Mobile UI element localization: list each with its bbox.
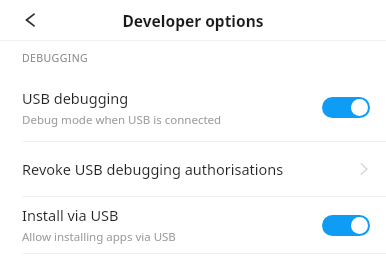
staticText: Revoke USB debugging authorisations	[22, 159, 360, 179]
staticText: Install via USB	[22, 205, 119, 225]
button[interactable]: USB debugging toggle, on	[322, 97, 370, 118]
staticText: Developer options	[0, 10, 386, 31]
staticText: DEBUGGING	[22, 51, 89, 65]
button[interactable]: Revoke USB debugging authorisations	[0, 142, 386, 196]
button[interactable]: Install via USB	[0, 197, 386, 253]
staticText: USB debugging	[22, 88, 129, 108]
button[interactable]: USB debugging	[0, 74, 386, 141]
staticText: Allow installing apps via USB	[22, 229, 176, 245]
button[interactable]: Back	[11, 0, 51, 40]
button[interactable]: Install via USB toggle, on	[322, 215, 370, 236]
staticText: Debug mode when USB is connected	[22, 112, 222, 128]
